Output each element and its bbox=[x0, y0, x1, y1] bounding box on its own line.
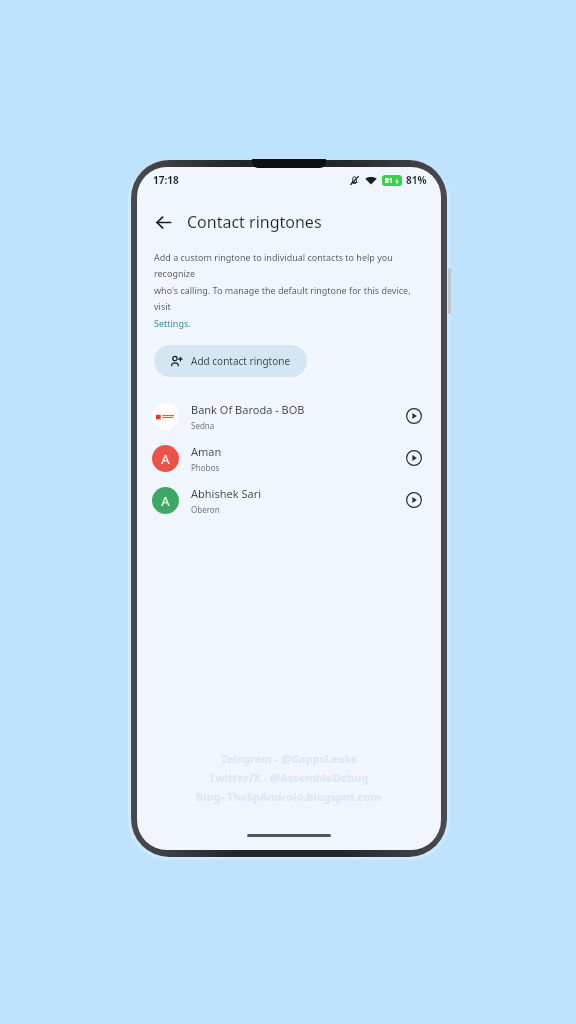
button[interactable]: Settings. bbox=[154, 317, 191, 329]
staticText: A bbox=[161, 450, 170, 468]
button[interactable]: A bbox=[137, 479, 441, 521]
staticText: Add contact ringtone bbox=[191, 354, 291, 368]
staticText: 17:18 bbox=[153, 173, 179, 187]
button[interactable]: Play ringtone bbox=[399, 485, 429, 515]
staticText: Oberon bbox=[191, 504, 220, 515]
staticText: A bbox=[161, 492, 170, 510]
button[interactable]: Add contact ringtone bbox=[154, 345, 307, 377]
staticText: Settings. bbox=[154, 317, 191, 329]
staticText: Twitter/X - @AssembleDebug bbox=[209, 770, 369, 785]
staticText: Bank Of Baroda - BOB bbox=[191, 402, 305, 417]
staticText: Blog- TheSpAndroid.blogspot.com bbox=[196, 789, 382, 804]
staticText: 81 bbox=[385, 176, 394, 186]
staticText: Sedna bbox=[191, 420, 215, 431]
staticText: Phobos bbox=[191, 462, 220, 473]
staticText: Contact ringtones bbox=[187, 211, 322, 233]
staticText: Telegram - @GappsLeaks bbox=[221, 751, 357, 766]
staticText: 81% bbox=[406, 173, 427, 187]
staticText: Add a custom ringtone to individual cont… bbox=[154, 251, 424, 279]
staticText: Aman bbox=[191, 444, 222, 459]
button[interactable]: Play ringtone bbox=[399, 401, 429, 431]
button[interactable]: Back bbox=[145, 205, 181, 239]
button[interactable]: A bbox=[137, 437, 441, 479]
button[interactable]: Play ringtone bbox=[399, 443, 429, 473]
staticText: who's calling. To manage the default rin… bbox=[154, 284, 424, 312]
button[interactable]: Bank Of Baroda - BOB bbox=[137, 395, 441, 437]
staticText: Abhishek Sari bbox=[191, 486, 262, 501]
